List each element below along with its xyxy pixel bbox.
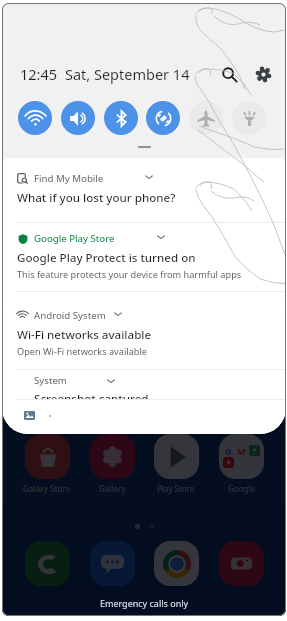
button[interactable]: Bluetooth <box>104 101 138 135</box>
button[interactable] <box>84 541 140 586</box>
button[interactable]: G <box>213 434 269 494</box>
staticText: Find My Mobile <box>34 172 104 184</box>
button[interactable]: Gallery <box>84 434 140 494</box>
staticText: G <box>225 445 232 456</box>
staticText: Wi-Fi networks available <box>17 327 152 343</box>
button[interactable]: Google Play Store <box>2 232 286 281</box>
staticText: Play Store <box>157 483 195 494</box>
button[interactable]: Settings <box>252 63 274 85</box>
staticText: Galaxy Store <box>23 483 71 494</box>
staticText: System <box>34 374 67 387</box>
button[interactable]: Wi-Fi <box>18 101 52 135</box>
button[interactable]: Search <box>218 63 240 85</box>
button[interactable] <box>213 541 269 586</box>
staticText: Google Play Store <box>34 232 115 244</box>
button[interactable]: System <box>34 374 149 407</box>
staticText: M <box>237 445 246 456</box>
staticText: Emergency calls only <box>100 597 189 609</box>
staticText: Gallery <box>99 483 126 494</box>
button[interactable]: Auto rotate <box>146 101 180 135</box>
staticText: Screenshot captured <box>34 391 149 407</box>
button[interactable]: Flashlight <box>232 101 266 135</box>
staticText: Open Wi-Fi networks available <box>17 345 147 358</box>
button[interactable]: Android System <box>2 309 286 358</box>
button[interactable]: Play Store <box>148 434 204 494</box>
button[interactable]: Airplane mode <box>189 101 223 135</box>
staticText: What if you lost your phone? <box>17 190 176 206</box>
staticText: Sat, September 14 <box>65 64 190 84</box>
button[interactable]: Sound <box>61 101 95 135</box>
button[interactable]: Find My Mobile <box>2 172 286 206</box>
staticText: Google Play Protect is turned on <box>17 250 196 266</box>
staticText: Android System <box>34 309 106 321</box>
button[interactable] <box>148 541 204 586</box>
staticText: This feature protects your device from h… <box>17 268 242 281</box>
button[interactable]: Galaxy Store <box>19 434 75 494</box>
staticText: 12:45 <box>20 64 58 84</box>
button[interactable] <box>19 541 75 586</box>
staticText: Google <box>228 483 255 494</box>
